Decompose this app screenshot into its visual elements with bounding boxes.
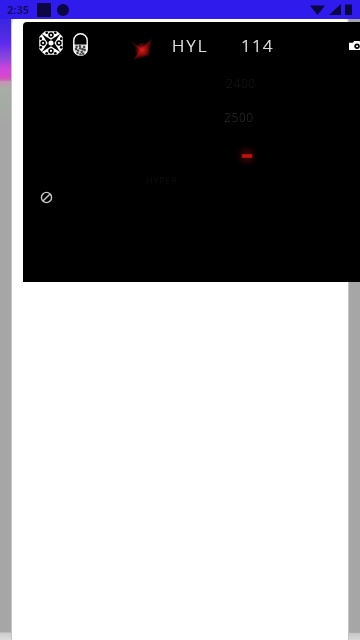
button[interactable]: Shield [73,33,88,56]
staticText: 114 [241,34,274,57]
staticText: 2400 [226,75,256,91]
button[interactable]: Power [23,22,360,282]
button[interactable]: Power [39,31,63,55]
staticText: 2500 [224,109,254,125]
staticText: HYL [172,34,209,57]
staticText: HYPER [146,174,178,186]
staticText: 2:35 [7,2,29,17]
button[interactable]: Camera [349,41,360,50]
button[interactable]: Muted [40,191,53,204]
